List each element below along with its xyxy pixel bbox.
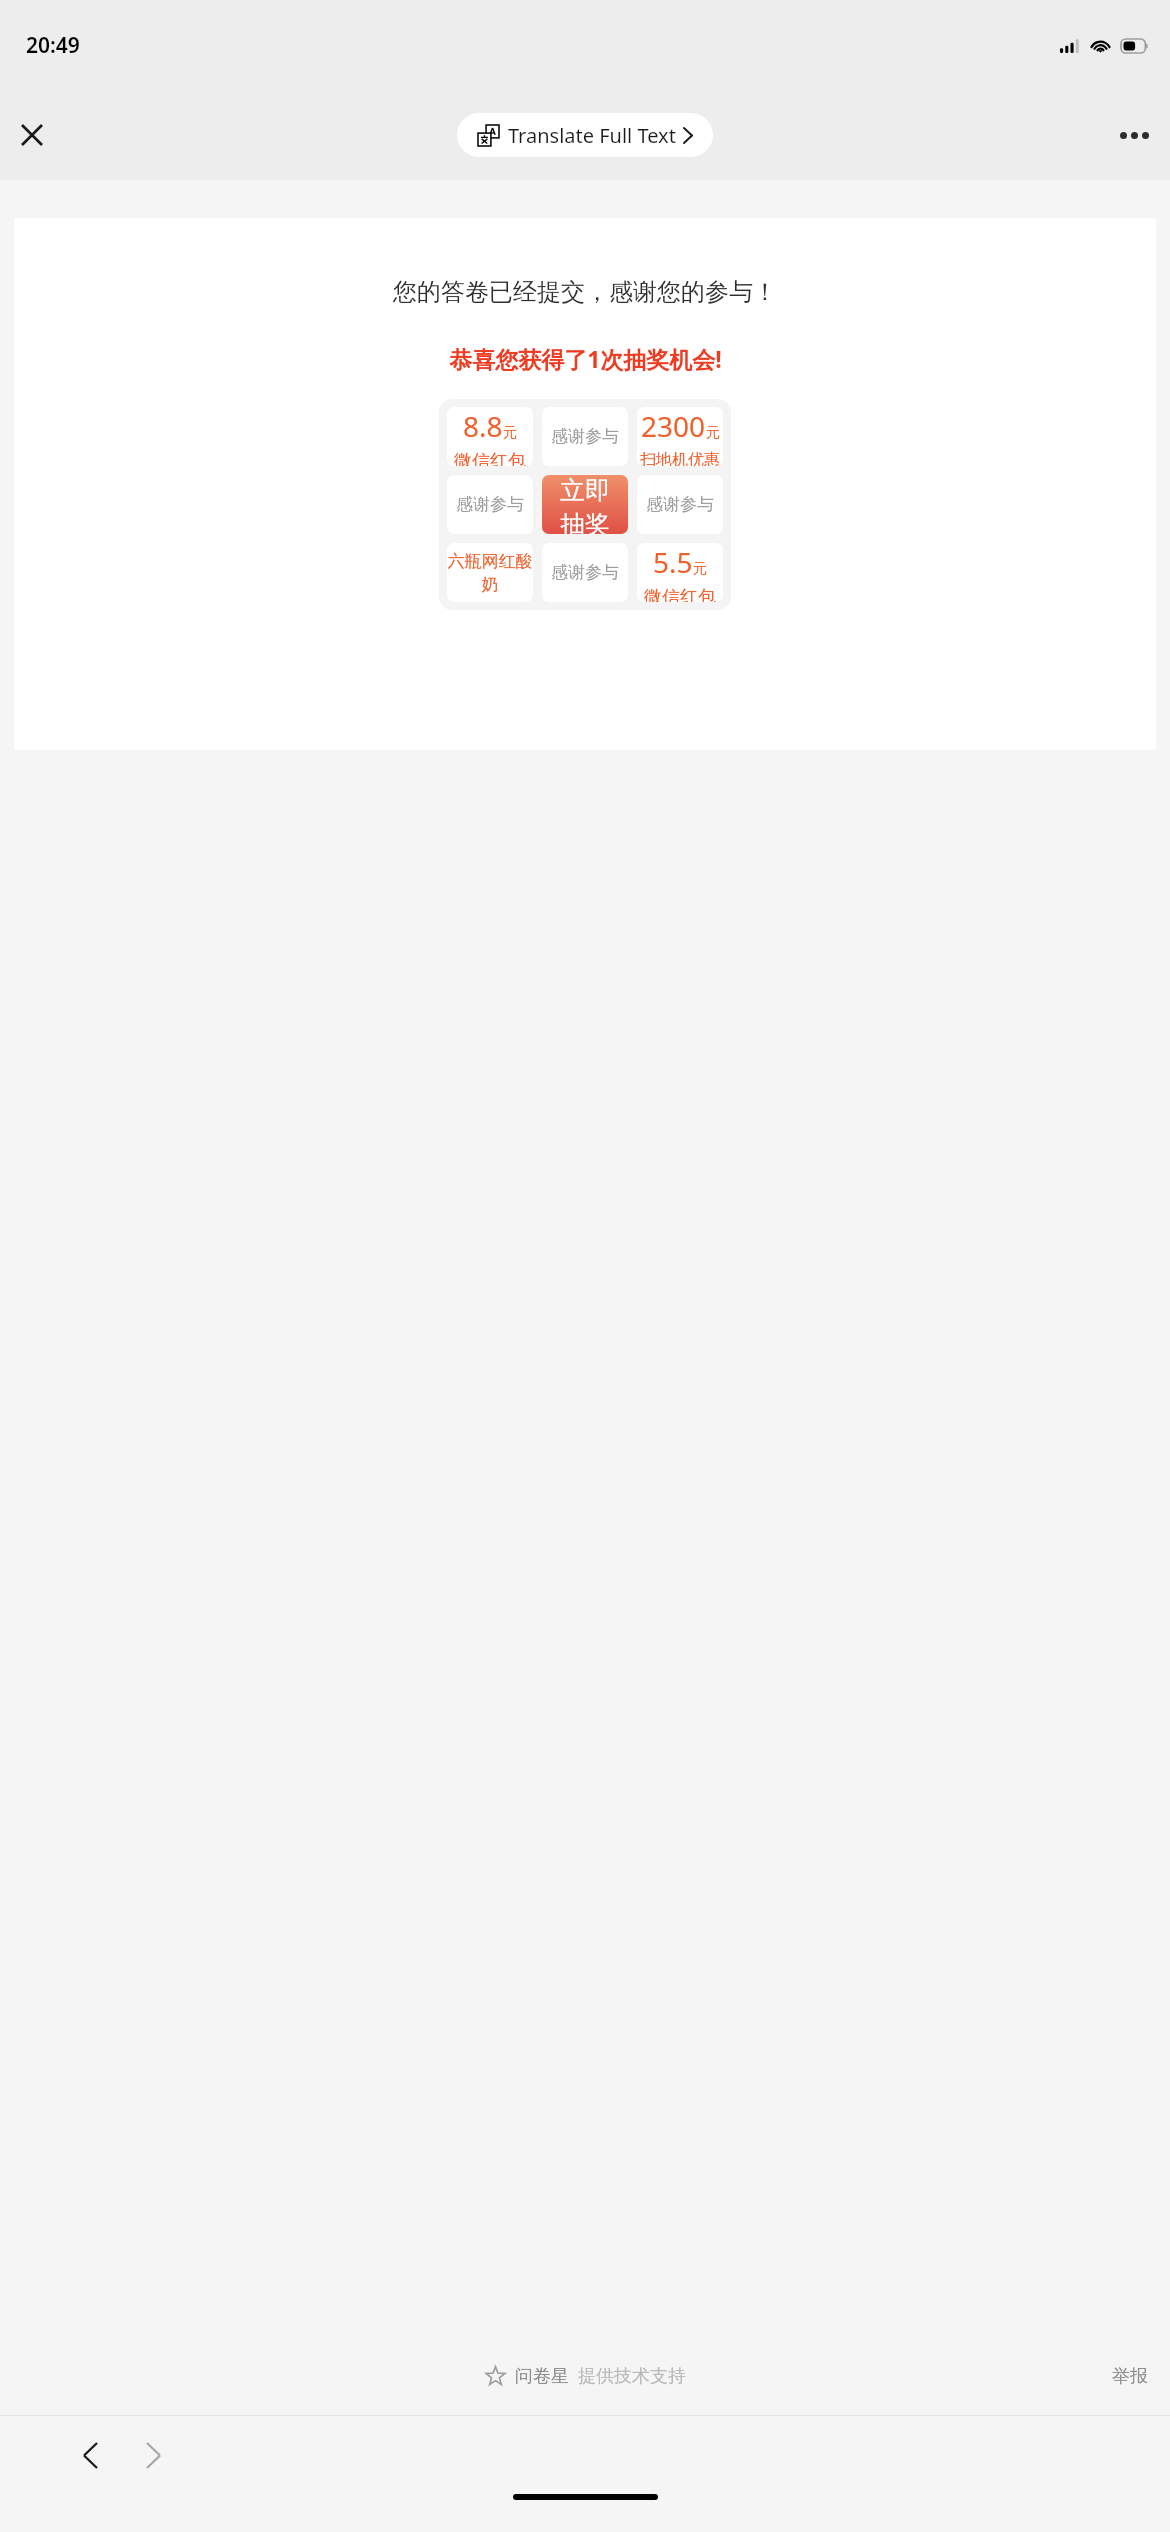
staticText: 感谢参与 <box>551 426 619 447</box>
staticText: 问卷星 <box>515 2365 569 2388</box>
staticText: 感谢参与 <box>456 494 524 515</box>
button[interactable]: Back <box>60 2425 120 2485</box>
staticText: 微信红包 <box>644 586 716 602</box>
button[interactable]: Translate Full Text <box>457 113 713 157</box>
staticText: 2300 <box>641 407 706 445</box>
button[interactable]: 5.5 <box>637 543 723 602</box>
staticText: 恭喜您获得了1次抽奖机会! <box>449 343 722 374</box>
staticText: 提供技术支持 <box>578 2365 686 2388</box>
button[interactable]: 立即 <box>542 475 628 534</box>
button[interactable]: 问卷星 <box>485 2365 686 2388</box>
staticText: 20:49 <box>26 31 80 60</box>
button[interactable]: 感谢参与 <box>637 475 723 534</box>
button[interactable]: 感谢参与 <box>542 543 628 602</box>
staticText: 感谢参与 <box>646 494 714 515</box>
staticText: 元 <box>706 424 720 442</box>
staticText: 8.8 <box>463 407 503 445</box>
button[interactable]: 2300 <box>637 407 723 466</box>
staticText: 微信红包 <box>454 450 526 466</box>
staticText: 感谢参与 <box>551 562 619 583</box>
staticText: Translate Full Text <box>508 122 676 149</box>
button[interactable]: 感谢参与 <box>447 475 533 534</box>
button[interactable]: Close <box>8 111 56 159</box>
staticText: 您的答卷已经提交，感谢您的参与！ <box>393 277 777 307</box>
staticText: 元 <box>693 560 707 578</box>
button[interactable]: 举报 <box>1112 2365 1148 2388</box>
staticText: 扫地机优惠券 <box>637 450 723 466</box>
button[interactable]: Forward <box>123 2425 183 2485</box>
staticText: 抽奖 <box>560 509 610 534</box>
button[interactable]: 8.8 <box>447 407 533 466</box>
staticText: 六瓶网红酸奶 <box>447 551 533 595</box>
button[interactable]: 感谢参与 <box>542 407 628 466</box>
button[interactable]: More options <box>1110 111 1158 159</box>
staticText: 立即 <box>560 475 610 506</box>
staticText: 元 <box>503 424 517 442</box>
staticText: 5.5 <box>653 543 693 581</box>
button[interactable]: 六瓶网红酸奶 <box>447 543 533 602</box>
